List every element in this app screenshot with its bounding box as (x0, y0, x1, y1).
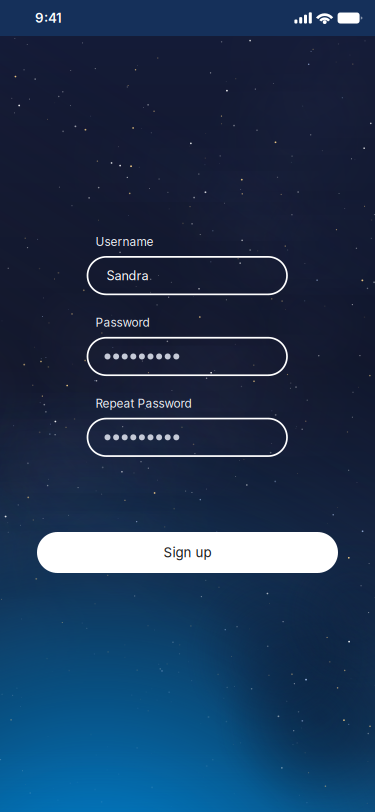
button[interactable] (87, 419, 287, 456)
staticText: 9:41 (35, 10, 62, 26)
staticText: Username (95, 234, 153, 249)
button[interactable]: Sign up (37, 532, 338, 573)
staticText: Sandra (106, 268, 148, 283)
button[interactable]: Sandra (87, 257, 287, 294)
staticText: Password (95, 315, 149, 330)
button[interactable] (87, 338, 287, 375)
staticText: Repeat Password (95, 396, 191, 411)
staticText: Sign up (163, 544, 211, 560)
